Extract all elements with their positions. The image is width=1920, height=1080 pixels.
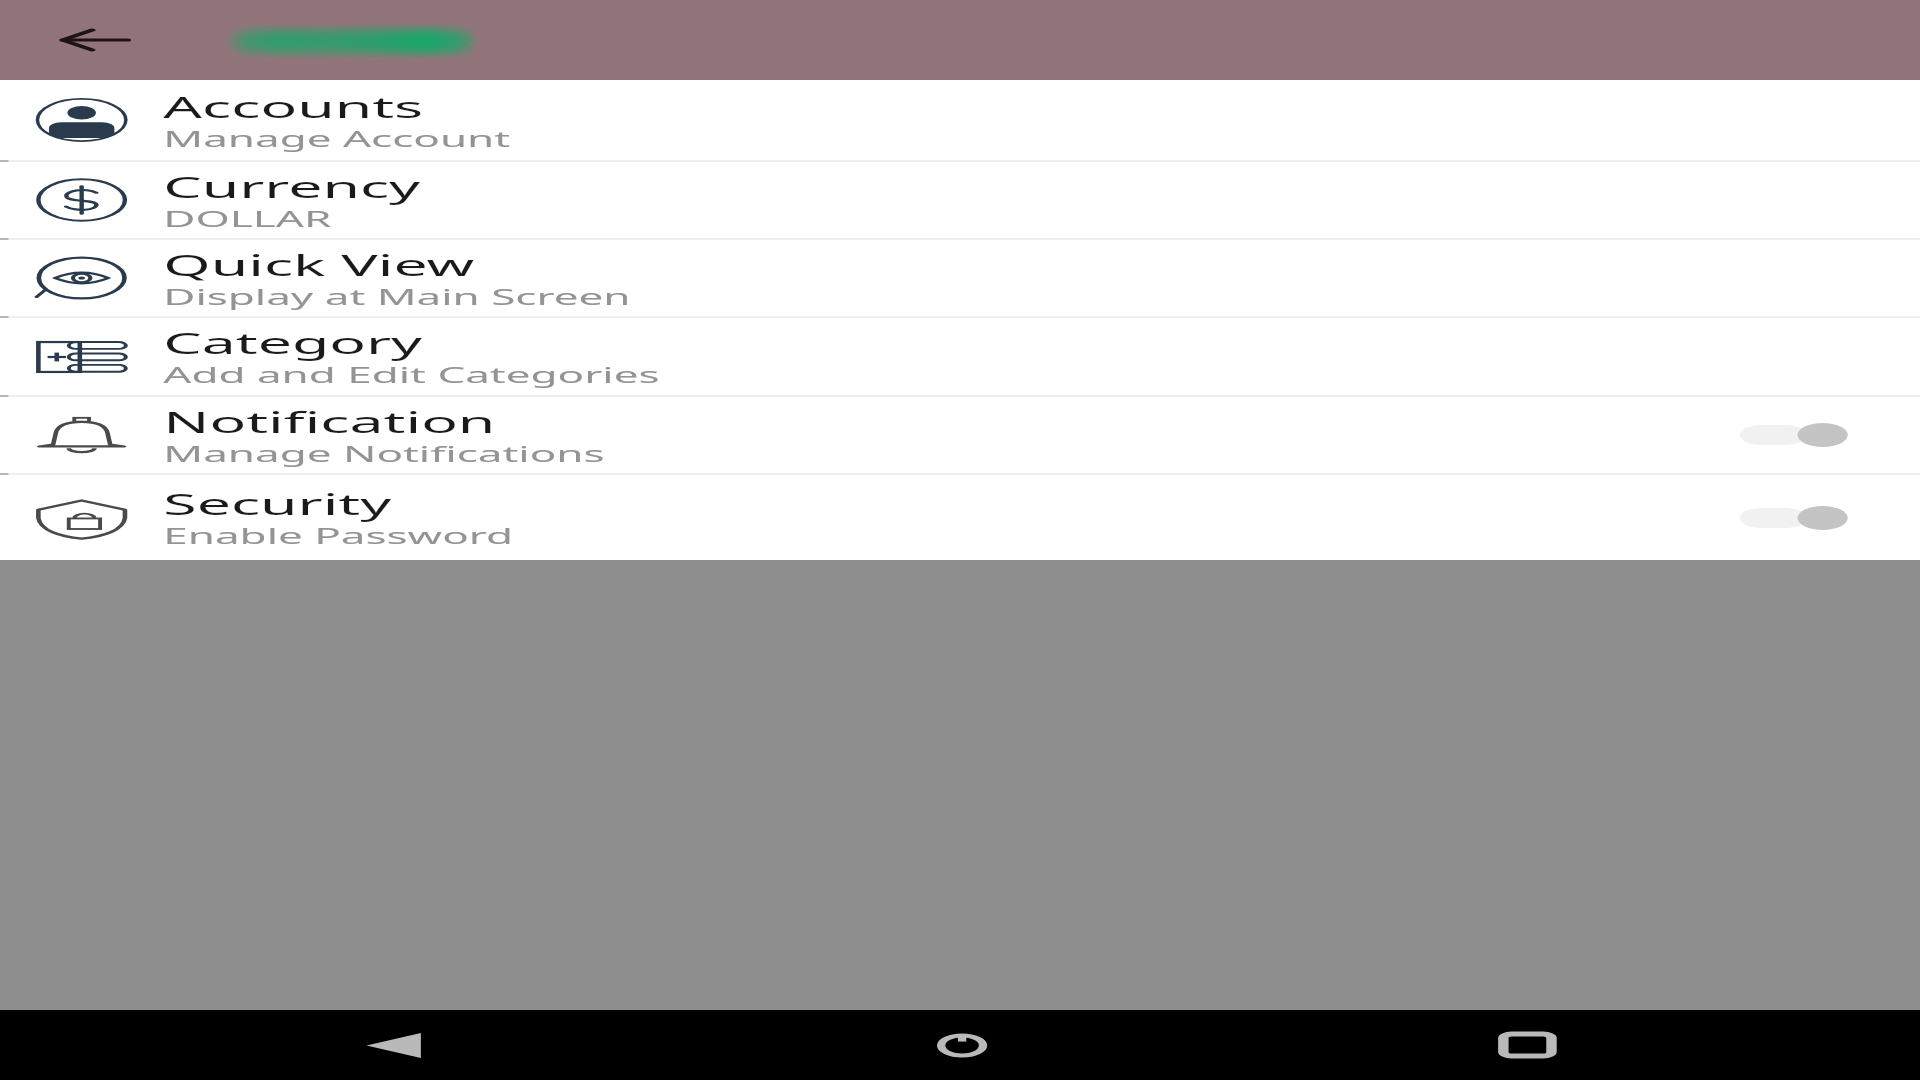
button[interactable]: Back: [343, 1021, 444, 1069]
staticText: Manage Notifications: [163, 440, 605, 469]
staticText: Display at Main Screen: [163, 283, 632, 312]
staticText: Currency: [163, 167, 421, 206]
button[interactable]: Back: [40, 11, 149, 69]
button[interactable]: Toggle Security: [1723, 498, 1861, 538]
staticText: Category: [163, 323, 423, 362]
button[interactable]: Category: [0, 318, 1920, 395]
button[interactable]: Quick View: [0, 240, 1920, 316]
staticText: DOLLAR: [163, 205, 333, 234]
button[interactable]: Currency: [0, 162, 1920, 238]
button[interactable]: Toggle Notification: [1723, 415, 1861, 455]
staticText: Manage Account: [163, 125, 511, 154]
button[interactable]: Security: [0, 475, 1920, 560]
button[interactable]: Recents: [1476, 1021, 1577, 1069]
button[interactable]: Home: [911, 1021, 1011, 1069]
staticText: Quick View: [163, 245, 475, 284]
button[interactable]: Settings: [224, 21, 479, 60]
staticText: Notification: [163, 402, 496, 441]
button[interactable]: Accounts: [0, 80, 1920, 160]
staticText: Add and Edit Categories: [163, 361, 659, 390]
staticText: Accounts: [163, 87, 425, 126]
staticText: Enable Password: [163, 522, 515, 551]
staticText: Security: [163, 484, 391, 523]
button[interactable]: Notification: [0, 397, 1920, 473]
